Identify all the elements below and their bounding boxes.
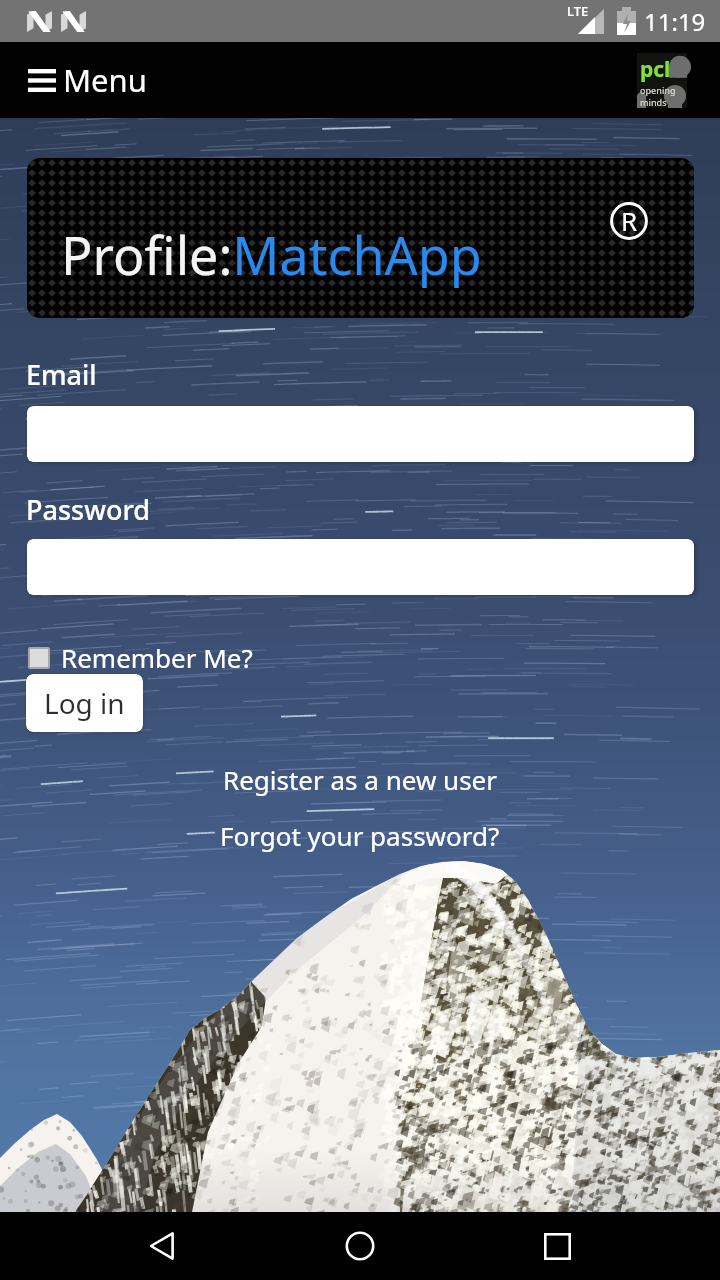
staticText: Log in [44, 684, 125, 722]
staticText: Remember Me? [61, 640, 253, 675]
button[interactable]: pcl opening minds logo [637, 53, 687, 108]
staticText: Profile:MatchApp [61, 219, 482, 290]
staticText: Password [26, 491, 151, 528]
staticText: LTE [567, 2, 589, 20]
staticText: Register as a new user [223, 762, 498, 797]
staticText: Forgot your password? [220, 818, 500, 853]
staticText: Email [26, 356, 97, 393]
staticText: pcl [640, 55, 671, 84]
button[interactable]: Forgot your password? [220, 818, 500, 853]
button[interactable]: Remember Me? [28, 640, 253, 675]
staticText: minds [640, 96, 667, 108]
button[interactable]: Menu [28, 59, 147, 101]
button[interactable] [27, 539, 694, 595]
button[interactable]: Back [129, 1212, 197, 1280]
staticText: 11:19 [644, 5, 706, 38]
staticText: Menu [63, 59, 147, 101]
button[interactable]: Home [326, 1212, 394, 1280]
button[interactable]: Register as a new user [223, 762, 498, 797]
button[interactable]: Recents [523, 1212, 591, 1280]
staticText: opening [640, 84, 676, 96]
staticText: R [621, 203, 638, 238]
button[interactable] [27, 406, 694, 462]
button[interactable]: Log in [26, 674, 143, 732]
other: Menu [28, 69, 56, 92]
